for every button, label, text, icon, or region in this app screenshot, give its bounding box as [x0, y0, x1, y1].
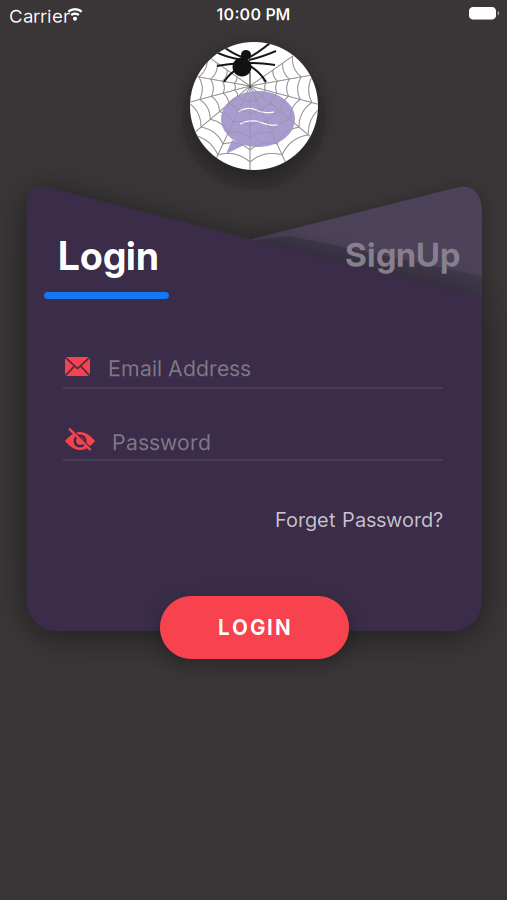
staticText: Forget Password? — [275, 508, 443, 532]
staticText: L O G I N — [218, 615, 291, 640]
staticText: 10:00 PM — [216, 5, 290, 24]
button[interactable]: L O G I N — [160, 596, 349, 659]
button[interactable]: Forget Password? — [275, 508, 443, 532]
button[interactable]: Password — [62, 418, 443, 462]
button[interactable]: Email Address — [62, 346, 443, 390]
staticText: Login — [58, 233, 159, 279]
staticText: SignUp — [345, 235, 460, 274]
staticText: Carrier — [9, 5, 70, 27]
button[interactable]: Login — [58, 233, 159, 279]
staticText: Email Address — [108, 356, 251, 381]
staticText: Password — [112, 430, 211, 455]
button[interactable]: SignUp — [345, 235, 460, 274]
